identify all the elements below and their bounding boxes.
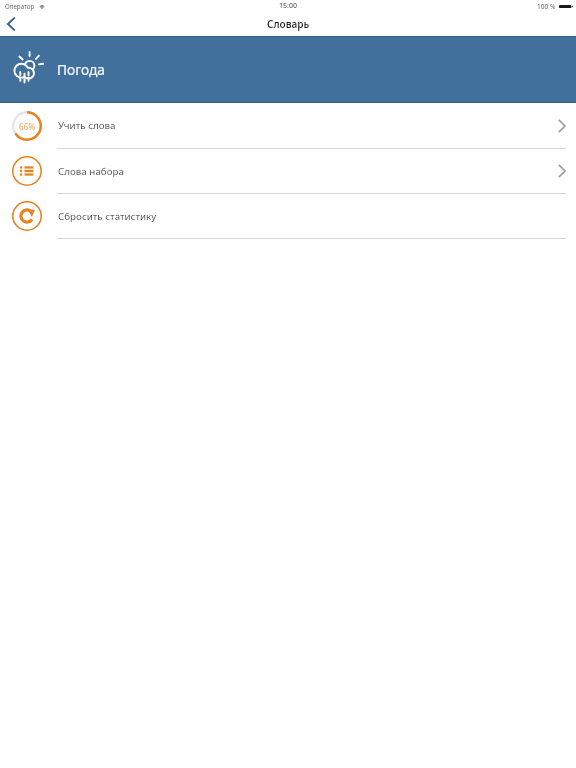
other: Open: [558, 164, 566, 178]
staticText: Погода: [57, 60, 105, 79]
staticText: 66%: [19, 121, 36, 132]
button[interactable]: Сбросить статистику: [0, 194, 576, 239]
staticText: 15:00: [279, 1, 297, 11]
staticText: Словарь: [267, 17, 310, 31]
staticText: Оператор: [5, 2, 35, 10]
staticText: Учить слова: [58, 119, 116, 132]
button[interactable]: Back: [0, 12, 28, 36]
staticText: Сбросить статистику: [58, 210, 157, 223]
button[interactable]: 66%: [0, 103, 576, 149]
staticText: Слова набора: [58, 165, 124, 178]
button[interactable]: Погода: [0, 36, 576, 103]
other: Open: [558, 119, 566, 133]
button[interactable]: Слова набора: [0, 149, 576, 194]
staticText: 100 %: [537, 2, 556, 11]
